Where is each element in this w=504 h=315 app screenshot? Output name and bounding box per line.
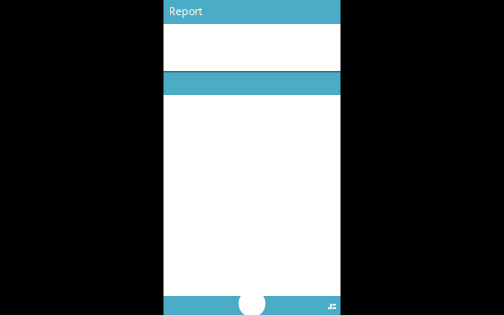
staticText: Report [168,4,202,18]
button[interactable]: Add [238,290,265,315]
button[interactable]: Reports [324,297,339,315]
